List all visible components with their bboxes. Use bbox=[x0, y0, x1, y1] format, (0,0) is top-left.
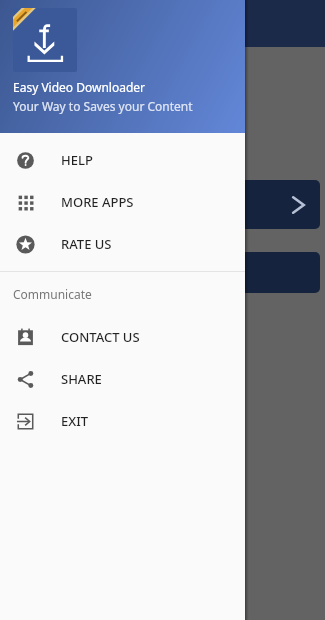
button[interactable]: EXIT bbox=[0, 400, 245, 442]
button[interactable]: CONTACT US bbox=[0, 316, 245, 358]
button[interactable]: Easy Video Downloader bbox=[0, 0, 245, 133]
button[interactable] bbox=[5, 252, 320, 293]
button[interactable]: Open bbox=[5, 180, 320, 229]
staticText: SHARE bbox=[61, 370, 102, 388]
staticText: Easy Video Downloader bbox=[13, 79, 146, 95]
staticText: Communicate bbox=[13, 286, 92, 302]
staticText: RATE US bbox=[61, 235, 112, 253]
button[interactable]: HELP bbox=[0, 139, 245, 181]
staticText: HELP bbox=[61, 151, 93, 169]
button[interactable]: MORE APPS bbox=[0, 181, 245, 223]
button[interactable]: RATE US bbox=[0, 223, 245, 265]
button[interactable]: SHARE bbox=[0, 358, 245, 400]
other: Open bbox=[287, 194, 309, 216]
staticText: CONTACT US bbox=[61, 328, 140, 346]
staticText: EXIT bbox=[61, 412, 89, 430]
staticText: Your Way to Saves your Content bbox=[13, 98, 193, 114]
staticText: MORE APPS bbox=[61, 193, 134, 211]
